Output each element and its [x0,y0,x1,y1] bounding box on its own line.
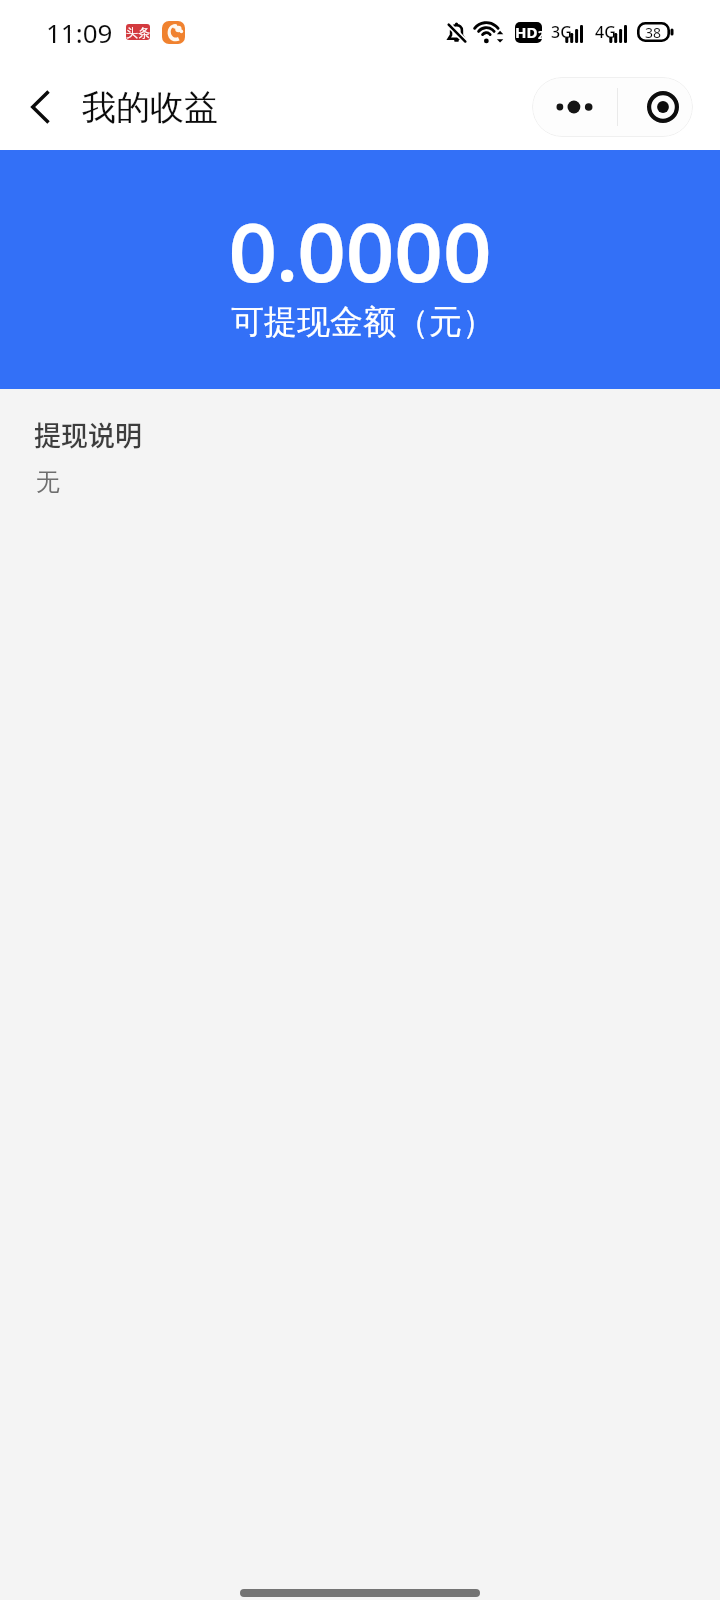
button[interactable]: Back [0,64,80,150]
staticText: 3G [551,21,572,43]
staticText: 我的收益 [82,86,218,129]
staticText: 提现说明 [34,415,142,454]
button[interactable]: Close mini program [618,77,693,137]
staticText: 0.0000 [228,200,492,310]
staticText: 头条 [126,25,150,40]
staticText: 38 [645,23,662,42]
staticText: HD [515,22,538,42]
staticText: 4G [595,21,616,43]
staticText: 2 [538,28,542,42]
staticText: 11:09 [46,15,113,50]
button[interactable]: More options [532,77,617,137]
staticText: 无 [36,467,60,497]
staticText: 可提现金额（元） [231,301,495,343]
